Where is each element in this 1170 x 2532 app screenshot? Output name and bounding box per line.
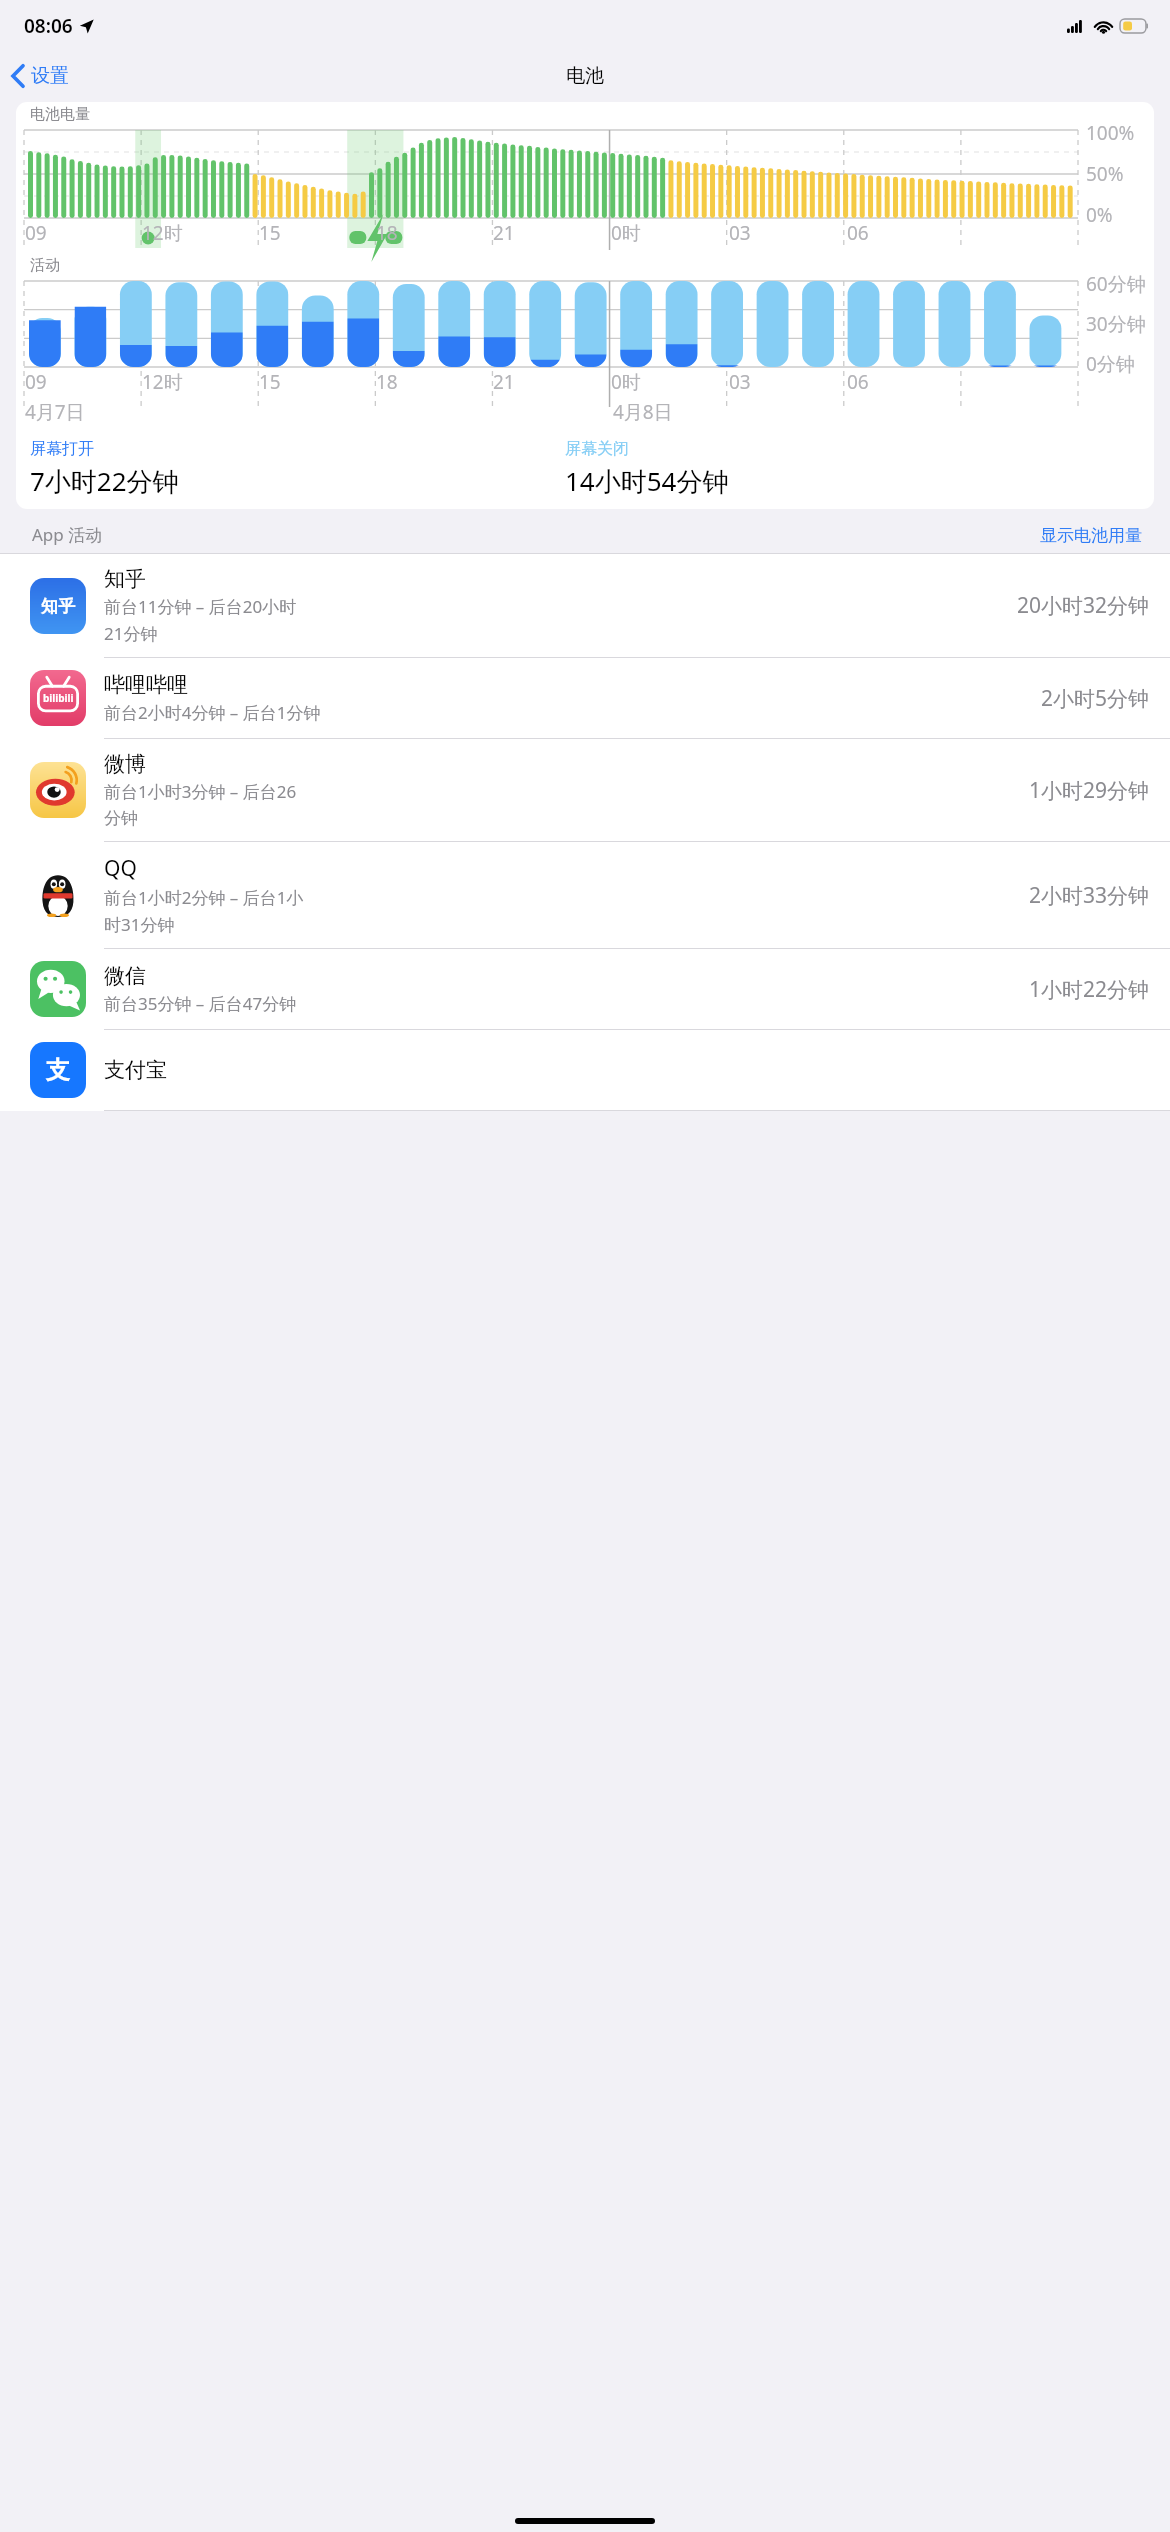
staticText: 7小时22分钟: [30, 463, 179, 499]
staticText: 前台11分钟 – 后台20小时 21分钟: [104, 595, 297, 645]
staticText: 支付宝: [104, 1057, 167, 1083]
button[interactable]: 显示电池用量: [1040, 525, 1142, 546]
staticText: 显示电池用量: [1040, 525, 1142, 546]
other: 知乎: [30, 578, 86, 634]
staticText: 1小时29分钟: [1029, 776, 1150, 805]
staticText: 电池: [566, 64, 604, 88]
staticText: 0分钟: [1086, 351, 1135, 377]
staticText: 03: [729, 220, 751, 246]
staticText: 0时: [611, 369, 641, 395]
staticText: 支: [46, 1055, 70, 1085]
staticText: 知乎: [104, 566, 146, 592]
staticText: 50%: [1086, 161, 1124, 187]
staticText: 12时: [142, 369, 183, 395]
staticText: 08:06: [24, 13, 73, 39]
staticText: 设置: [31, 64, 69, 88]
staticText: 21: [493, 369, 515, 395]
staticText: 知乎: [41, 596, 75, 617]
button[interactable]: 支付宝: [0, 1030, 1170, 1111]
staticText: 活动: [30, 256, 60, 275]
staticText: 12时: [142, 220, 183, 246]
staticText: 4月7日: [25, 399, 85, 425]
button[interactable]: 知乎: [0, 554, 1170, 658]
staticText: 屏幕关闭: [565, 439, 629, 459]
staticText: 前台1小时2分钟 – 后台1小 时31分钟: [104, 886, 304, 936]
staticText: QQ: [104, 854, 137, 883]
staticText: 0%: [1086, 202, 1113, 228]
staticText: 100%: [1086, 120, 1135, 146]
button[interactable]: 微信: [0, 949, 1170, 1030]
staticText: 微博: [104, 751, 146, 777]
staticText: 4月8日: [613, 399, 673, 425]
staticText: 18: [376, 369, 398, 395]
staticText: 06: [847, 220, 869, 246]
staticText: 2小时5分钟: [1041, 684, 1150, 713]
button[interactable]: 屏幕打开: [30, 439, 565, 499]
other: 微博: [30, 762, 86, 818]
staticText: 15: [259, 220, 281, 246]
staticText: 30分钟: [1086, 311, 1146, 337]
staticText: 21: [493, 220, 515, 246]
button[interactable]: 屏幕关闭: [565, 439, 1142, 499]
staticText: 2小时33分钟: [1029, 881, 1150, 910]
staticText: 03: [729, 369, 751, 395]
button[interactable]: 哔哩哔哩: [0, 658, 1170, 739]
staticText: 0时: [611, 220, 641, 246]
other: 支付宝: [30, 1042, 86, 1098]
staticText: bilibili: [43, 691, 74, 705]
staticText: 屏幕打开: [30, 439, 94, 459]
other: QQ: [30, 867, 86, 923]
staticText: 09: [25, 220, 47, 246]
button[interactable]: 设置: [0, 58, 83, 94]
staticText: 前台1小时3分钟 – 后台26 分钟: [104, 780, 297, 829]
staticText: 60分钟: [1086, 271, 1146, 297]
staticText: 20小时32分钟: [1017, 591, 1150, 620]
other: 哔哩哔哩: [30, 670, 86, 726]
staticText: 微信: [104, 963, 146, 989]
staticText: 14小时54分钟: [565, 463, 729, 499]
staticText: 18: [376, 220, 398, 246]
button[interactable]: QQ: [0, 842, 1170, 949]
staticText: 09: [25, 369, 47, 395]
staticText: 15: [259, 369, 281, 395]
button[interactable]: 微博: [0, 739, 1170, 842]
staticText: 前台35分钟 – 后台47分钟: [104, 992, 297, 1015]
staticText: 1小时22分钟: [1029, 975, 1150, 1004]
staticText: 前台2小时4分钟 – 后台1分钟: [104, 701, 321, 724]
staticText: App 活动: [32, 523, 103, 546]
staticText: 06: [847, 369, 869, 395]
staticText: 哔哩哔哩: [104, 672, 188, 698]
staticText: 电池电量: [30, 105, 90, 124]
other: 微信: [30, 961, 86, 1017]
